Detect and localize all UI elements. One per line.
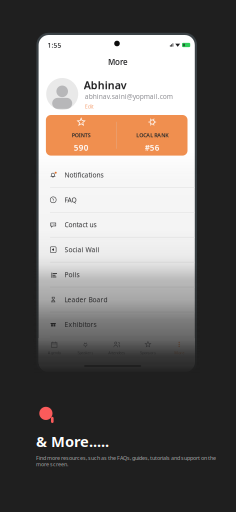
- staticText: Social Wall: [64, 245, 99, 254]
- staticText: 1:55: [47, 41, 61, 50]
- staticText: & More.....: [36, 432, 109, 451]
- staticText: Polls: [64, 270, 79, 279]
- staticText: Find more resources, such as the FAQs, g…: [36, 454, 216, 462]
- button[interactable]: Social Wall: [39, 237, 195, 262]
- staticText: Exhibitors: [64, 320, 96, 329]
- button[interactable]: Agenda: [39, 341, 70, 356]
- staticText: Abhinav: [84, 78, 127, 92]
- button[interactable]: FAQ: [39, 188, 195, 213]
- staticText: 590: [74, 142, 89, 153]
- staticText: Edit: [85, 103, 94, 110]
- staticText: abhinav.saini@yopmail.com: [85, 92, 173, 101]
- staticText: Speakers: [77, 350, 93, 355]
- staticText: Attendees: [108, 350, 125, 355]
- staticText: Leader Board: [64, 295, 107, 304]
- staticText: LOCAL RANK: [136, 132, 168, 139]
- button[interactable]: Edit: [85, 103, 195, 110]
- staticText: POINTS: [72, 132, 91, 139]
- button[interactable]: Sponsors: [132, 341, 163, 356]
- button[interactable]: Contact us: [39, 213, 195, 237]
- staticText: FAQ: [64, 195, 76, 204]
- button[interactable]: Attendees: [101, 341, 132, 356]
- staticText: Agenda: [48, 350, 61, 355]
- staticText: more screen.: [36, 461, 68, 468]
- button[interactable]: Exhibitors: [39, 312, 195, 337]
- staticText: Notifications: [64, 170, 103, 179]
- staticText: More: [108, 57, 128, 67]
- button[interactable]: Notifications: [39, 163, 195, 188]
- button[interactable]: Polls: [39, 262, 195, 287]
- button[interactable]: More: [164, 341, 195, 356]
- staticText: #56: [145, 142, 160, 153]
- button[interactable]: Speakers: [70, 341, 101, 356]
- button[interactable]: Leader Board: [39, 287, 195, 312]
- staticText: Contact us: [64, 220, 96, 229]
- staticText: Sponsors: [140, 350, 156, 355]
- staticText: More: [174, 350, 184, 355]
